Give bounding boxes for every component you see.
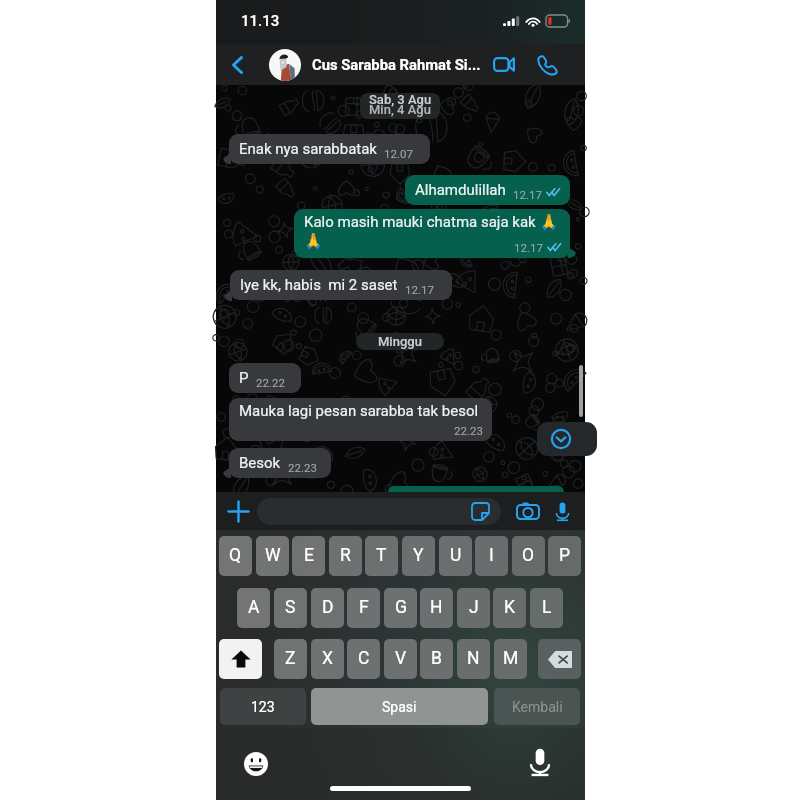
button[interactable]: G	[384, 588, 417, 628]
staticText: Kembali	[512, 699, 563, 715]
staticText: Z	[285, 648, 296, 669]
staticText: Sab, 3 Agu	[369, 92, 432, 107]
staticText: H	[430, 597, 443, 618]
staticText: Q	[229, 545, 242, 566]
staticText: Kalo masih mauki chatma saja kak 🙏	[304, 213, 559, 231]
staticText: V	[395, 648, 407, 669]
staticText: C	[358, 648, 370, 669]
staticText: O	[522, 545, 535, 566]
button[interactable]: Video call	[487, 44, 521, 85]
button[interactable]: V	[384, 639, 417, 679]
staticText: 🙏	[304, 232, 323, 250]
button[interactable]: Attach	[216, 492, 260, 530]
staticText: 12.17	[513, 188, 542, 201]
button[interactable]: K	[493, 588, 526, 628]
button[interactable]: B	[420, 639, 453, 679]
staticText: M	[503, 648, 519, 669]
button[interactable]: Kembali	[494, 688, 580, 725]
staticText: 22.23	[454, 424, 483, 437]
button[interactable]: Shift	[219, 639, 262, 679]
button[interactable]: Mauka lagi pesan sarabba tak besol	[229, 398, 492, 441]
button[interactable]: Camera	[509, 492, 546, 530]
button[interactable]: Enak nya sarabbatak	[229, 134, 430, 164]
staticText: Besok	[239, 454, 281, 472]
staticText: Y	[413, 545, 424, 566]
staticText: 22.22	[256, 376, 285, 389]
button[interactable]: O	[512, 536, 545, 576]
staticText: N	[467, 648, 480, 669]
staticText: A	[248, 597, 260, 618]
button[interactable]: Back	[220, 44, 254, 85]
staticText: Iye kk, habis mi 2 saset	[240, 276, 398, 294]
staticText: U	[450, 545, 462, 566]
staticText: P	[239, 369, 249, 387]
button[interactable]: W	[256, 536, 289, 576]
staticText: Spasi	[382, 699, 417, 715]
button[interactable]: N	[457, 639, 490, 679]
button[interactable]: L	[530, 588, 563, 628]
button[interactable]: T	[365, 536, 398, 576]
button[interactable]: Spasi	[311, 688, 488, 725]
staticText: R	[340, 545, 351, 566]
button[interactable]: R	[329, 536, 362, 576]
button[interactable]: P	[229, 363, 301, 393]
staticText: 12.17	[514, 241, 543, 254]
button[interactable]: P	[548, 536, 581, 576]
button[interactable]: S	[274, 588, 307, 628]
button[interactable]: Dictate	[524, 746, 556, 778]
button[interactable]: U	[439, 536, 472, 576]
button[interactable]: Kalo masih mauki chatma saja kak 🙏	[294, 209, 570, 258]
button[interactable]	[257, 498, 501, 525]
button[interactable]: Voice call	[527, 44, 567, 85]
button[interactable]: H	[420, 588, 453, 628]
staticText: T	[376, 545, 387, 566]
button[interactable]: C	[347, 639, 380, 679]
button[interactable]: F	[347, 588, 380, 628]
staticText: L	[542, 597, 552, 618]
button[interactable]: Minggu	[356, 333, 444, 350]
staticText: Cus Sarabba Rahmat Si...	[312, 56, 481, 73]
staticText: I	[489, 545, 494, 566]
staticText: 22.23	[288, 461, 317, 474]
staticText: Enak nya sarabbatak	[239, 140, 377, 158]
button[interactable]: Iye kk, habis mi 2 saset	[230, 270, 452, 300]
staticText: B	[431, 648, 442, 669]
staticText: 11.13	[241, 12, 280, 30]
staticText: 123	[251, 699, 275, 715]
staticText: G	[395, 597, 407, 618]
staticText: S	[285, 597, 296, 618]
staticText: F	[359, 597, 369, 618]
staticText: 12.17	[405, 283, 434, 296]
button[interactable]: Alhamdulillah	[405, 175, 570, 205]
button[interactable]: Cus Sarabba Rahmat Si...	[269, 44, 481, 85]
staticText: E	[304, 545, 314, 566]
staticText: Min, 4 Agu	[369, 102, 431, 117]
button[interactable]: M	[494, 639, 527, 679]
button[interactable]: D	[311, 588, 344, 628]
button[interactable]: Z	[274, 639, 307, 679]
button[interactable]: Q	[219, 536, 252, 576]
staticText: 12.07	[384, 147, 413, 160]
button[interactable]: A	[237, 588, 270, 628]
staticText: D	[322, 597, 334, 618]
staticText: Mauka lagi pesan sarabba tak besol	[239, 402, 479, 420]
button[interactable]: E	[292, 536, 325, 576]
button[interactable]: Y	[402, 536, 435, 576]
button[interactable]: 123	[220, 688, 306, 725]
staticText: Minggu	[378, 334, 422, 349]
button[interactable]: Emoji	[244, 752, 268, 776]
button[interactable]: Voice message	[545, 492, 579, 530]
button[interactable]: J	[457, 588, 490, 628]
staticText: K	[504, 597, 515, 618]
button[interactable]: Scroll to bottom	[537, 422, 597, 456]
button[interactable]: Backspace	[538, 639, 581, 679]
button[interactable]: I	[475, 536, 508, 576]
staticText: W	[265, 545, 281, 566]
staticText: P	[559, 545, 571, 566]
staticText: J	[469, 597, 479, 618]
button[interactable]: X	[311, 639, 344, 679]
staticText: X	[322, 648, 333, 669]
button[interactable]: Besok	[229, 448, 331, 478]
staticText: Alhamdulillah	[415, 181, 506, 199]
